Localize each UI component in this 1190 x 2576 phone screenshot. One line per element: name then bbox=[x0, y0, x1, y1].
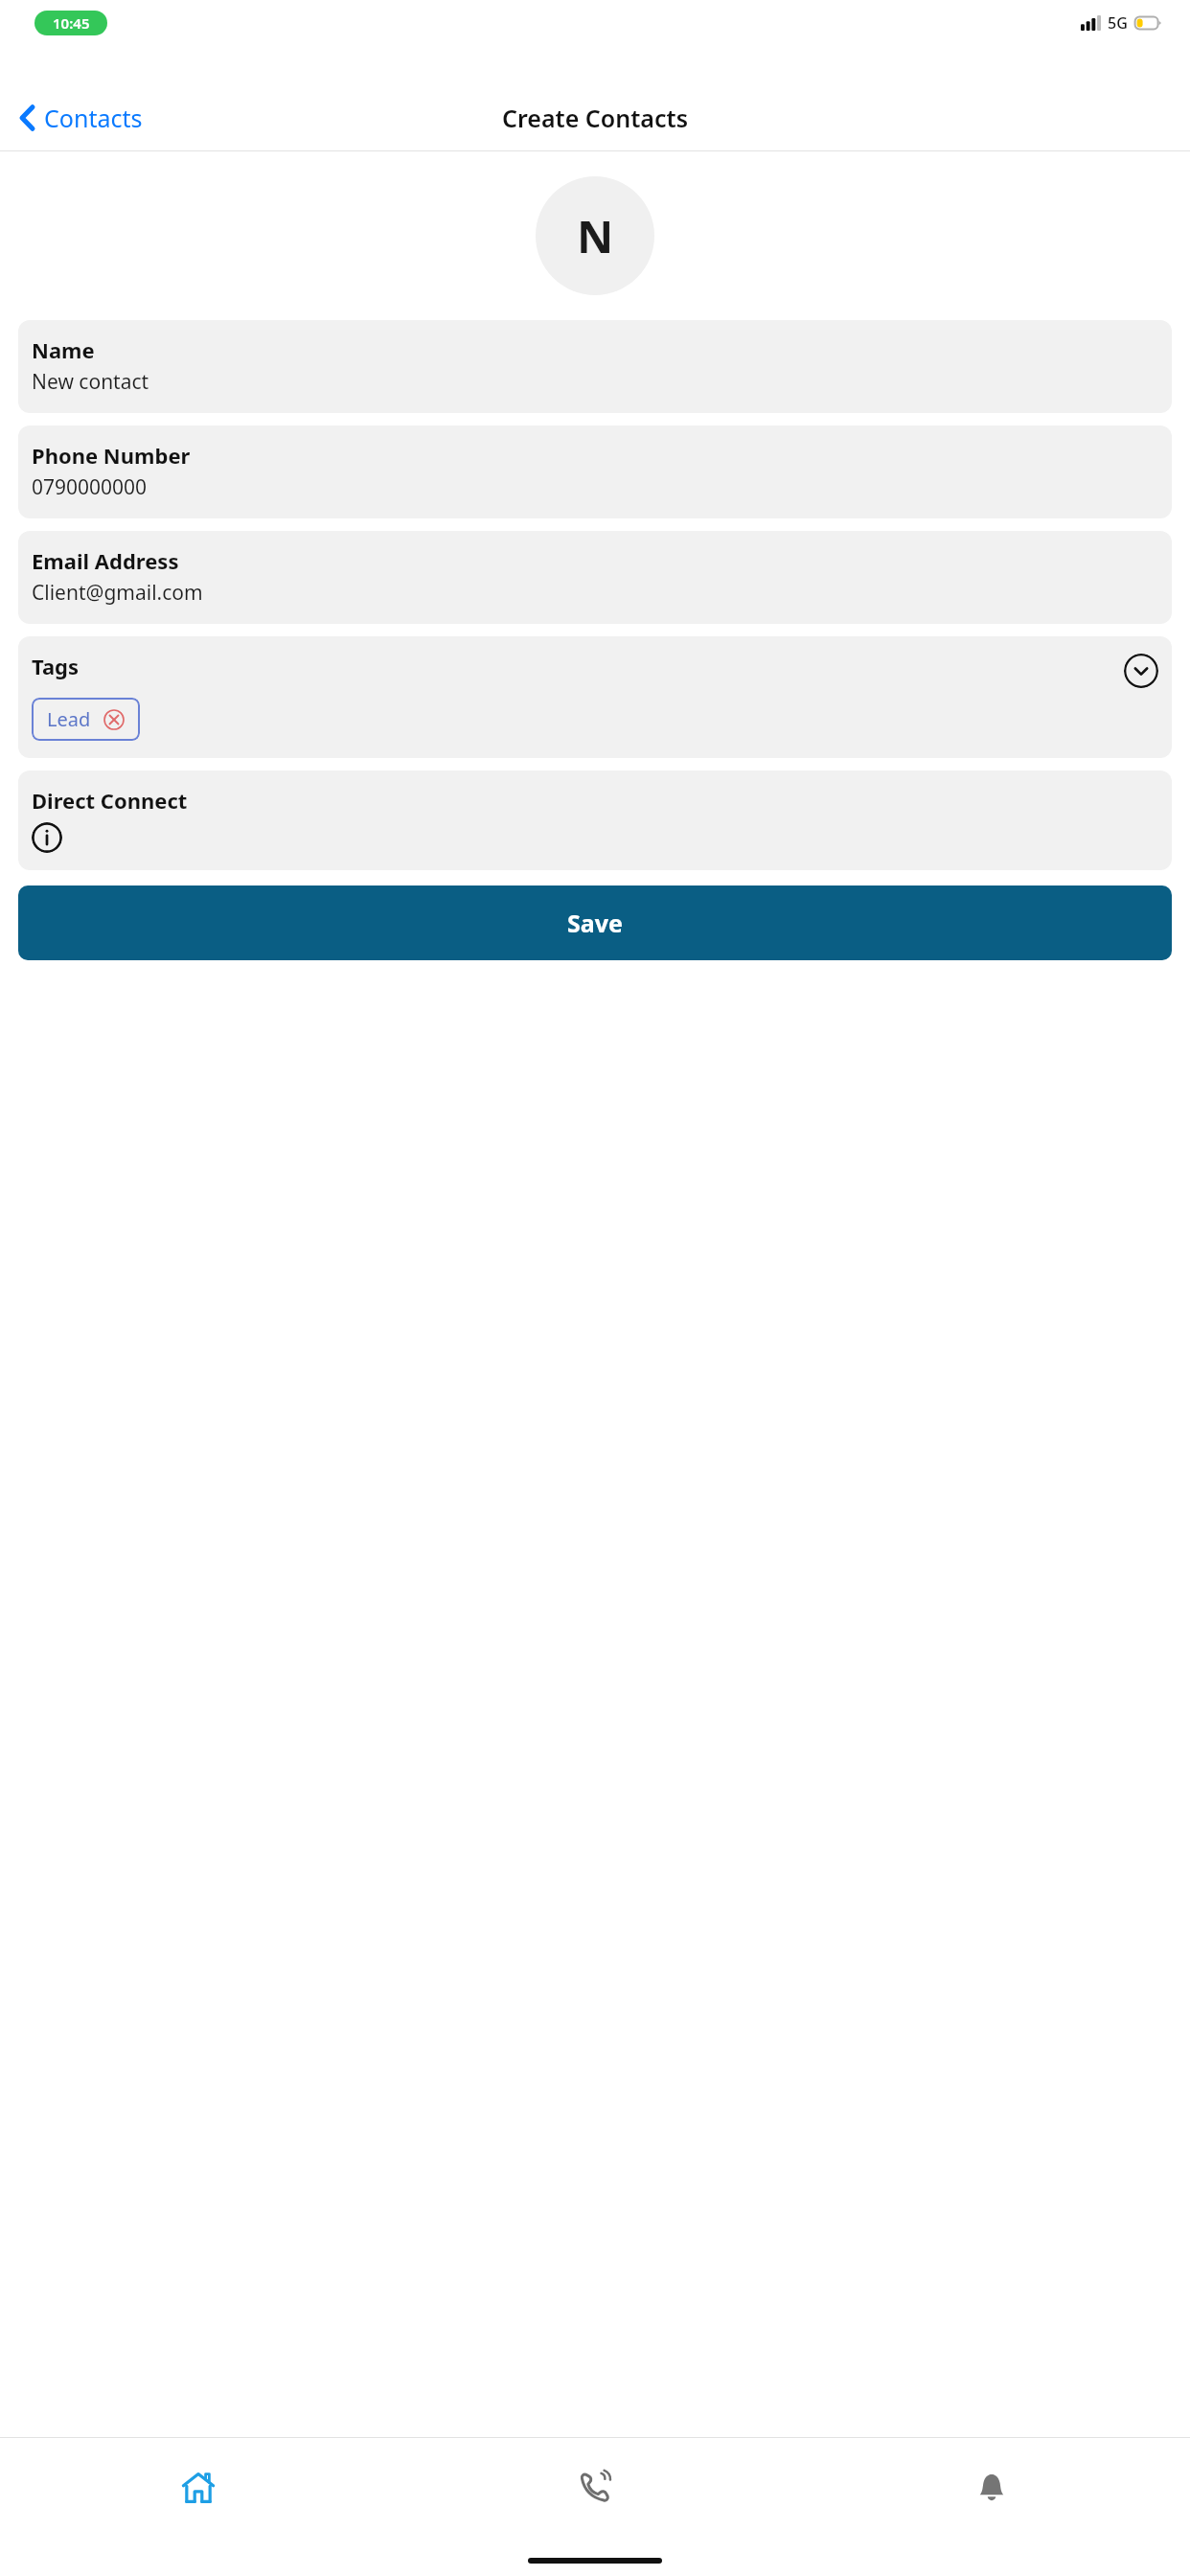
button[interactable]: Name bbox=[18, 320, 1172, 413]
button[interactable]: Email Address bbox=[18, 531, 1172, 624]
staticText: 0790000000 bbox=[32, 473, 148, 501]
button[interactable]: Direct Connect info bbox=[32, 822, 62, 853]
other: Remove tag bbox=[103, 709, 125, 730]
button[interactable]: Save bbox=[18, 885, 1172, 960]
staticText: Tags bbox=[32, 652, 80, 680]
button[interactable]: Home bbox=[166, 2455, 231, 2520]
staticText: N bbox=[577, 205, 614, 266]
staticText: Client@gmail.com bbox=[32, 579, 203, 607]
button[interactable]: Contacts bbox=[11, 96, 150, 140]
staticText: Name bbox=[32, 335, 95, 364]
button[interactable]: Phone Number bbox=[18, 425, 1172, 518]
button[interactable]: Tags bbox=[18, 636, 1172, 758]
button[interactable]: Contact photo bbox=[536, 176, 654, 295]
staticText: Contacts bbox=[44, 102, 143, 134]
button[interactable]: Call bbox=[561, 2453, 629, 2520]
staticText: 10:45 bbox=[53, 13, 90, 33]
button[interactable]: Expand tags bbox=[1124, 654, 1158, 688]
button[interactable]: Direct Connect bbox=[18, 770, 1172, 870]
staticText: Direct Connect bbox=[32, 786, 188, 815]
staticText: 5G bbox=[1108, 12, 1128, 34]
staticText: Email Address bbox=[32, 546, 179, 575]
staticText: Lead bbox=[47, 706, 91, 732]
button[interactable]: Notifications bbox=[959, 2455, 1024, 2520]
button[interactable]: Lead bbox=[32, 698, 140, 741]
staticText: Save bbox=[567, 907, 623, 939]
staticText: Phone Number bbox=[32, 441, 191, 470]
staticText: New contact bbox=[32, 368, 149, 396]
staticText: Create Contacts bbox=[502, 102, 688, 134]
